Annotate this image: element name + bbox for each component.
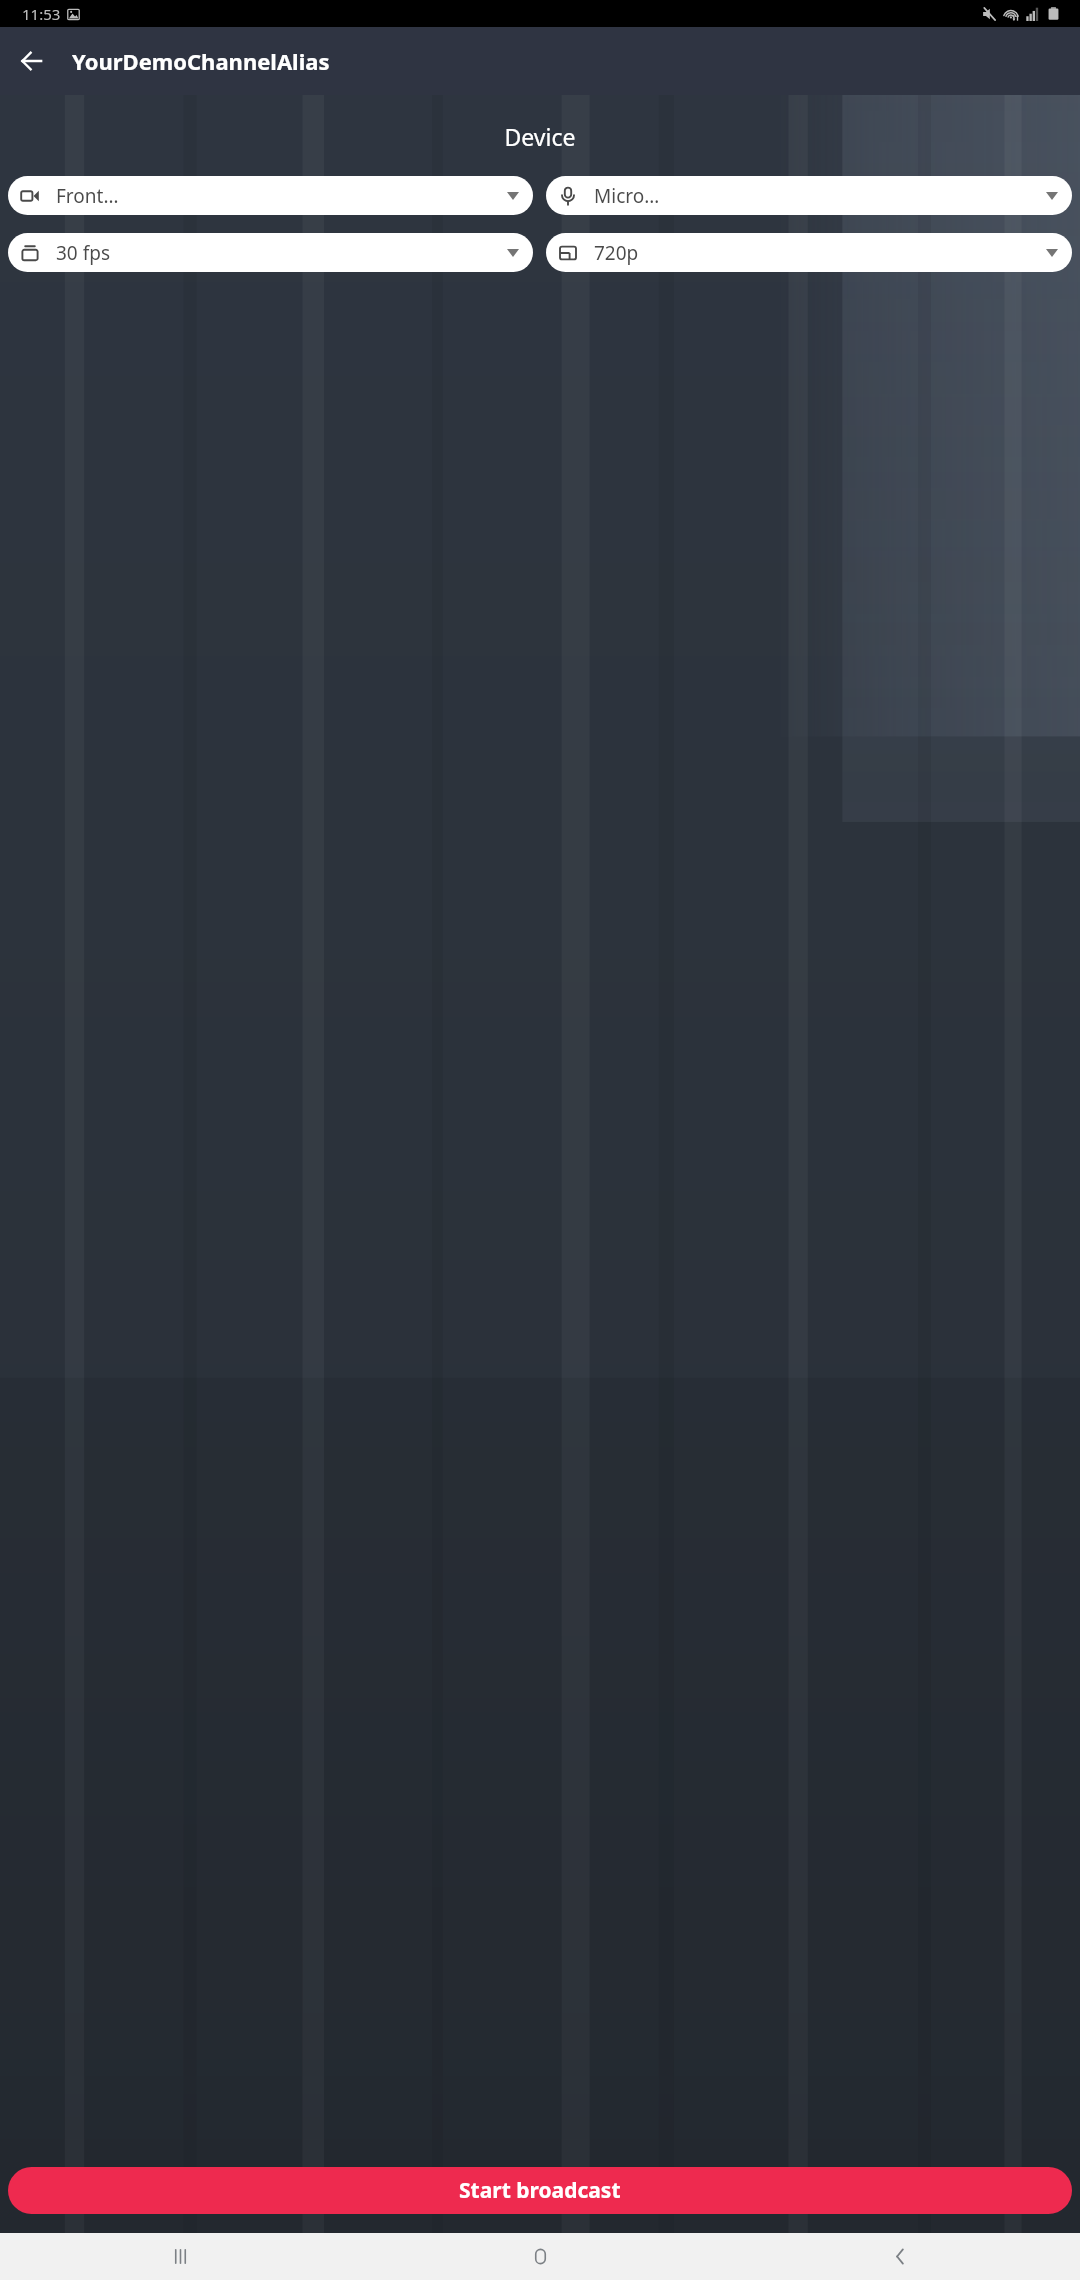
staticText: 11:53 — [22, 4, 61, 24]
staticText: Front… — [56, 183, 507, 209]
button[interactable]: Micro… — [546, 176, 1072, 215]
staticText: YourDemoChannelAlias — [72, 46, 330, 76]
button[interactable]: Home — [360, 2233, 720, 2280]
button[interactable]: Back — [720, 2233, 1080, 2280]
staticText: Micro… — [594, 183, 1046, 209]
button[interactable]: 720p — [546, 233, 1072, 272]
button[interactable]: Start broadcast — [8, 2167, 1072, 2214]
staticText: 30 fps — [56, 240, 507, 266]
button[interactable]: Front… — [8, 176, 533, 215]
staticText: Device — [0, 121, 1080, 152]
staticText: 720p — [594, 240, 1046, 266]
button[interactable]: Recent apps — [0, 2233, 360, 2280]
button[interactable]: Back — [8, 37, 56, 85]
button[interactable]: 30 fps — [8, 233, 533, 272]
staticText: Start broadcast — [459, 2176, 621, 2205]
